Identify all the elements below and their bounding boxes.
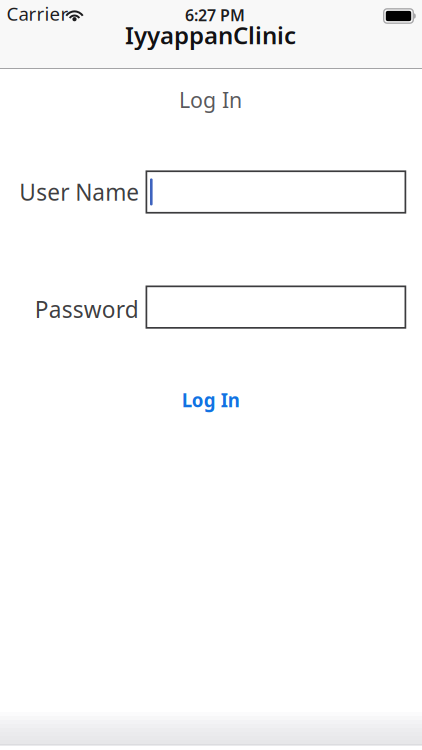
staticText: IyyappanClinic: [125, 19, 296, 51]
staticText: User Name: [19, 177, 139, 207]
staticText: Log In: [182, 387, 240, 412]
button[interactable]: User Name: [146, 171, 405, 213]
staticText: 6:27 PM: [185, 4, 245, 26]
button[interactable]: Password: [146, 286, 405, 328]
staticText: Log In: [179, 85, 242, 114]
button[interactable]: Log In: [176, 383, 246, 416]
staticText: Password: [35, 294, 139, 324]
staticText: Carrier: [6, 1, 68, 26]
